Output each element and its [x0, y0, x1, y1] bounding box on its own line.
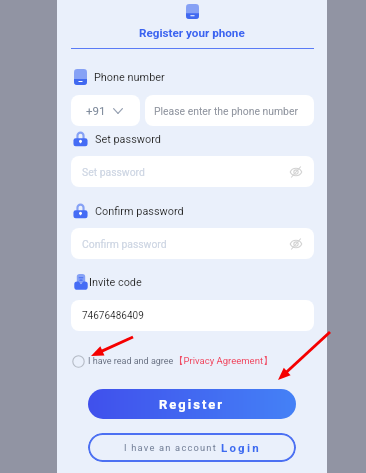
- staticText: Register your phone: [139, 26, 245, 40]
- button[interactable]: Toggle password visibility: [289, 165, 302, 178]
- button[interactable]: +91: [71, 95, 140, 126]
- button[interactable]: Set password: [71, 156, 314, 187]
- button[interactable]: Confirm password: [71, 228, 314, 259]
- staticText: Register: [159, 397, 225, 412]
- button[interactable]: Register: [88, 389, 296, 419]
- button[interactable]: I have an account: [88, 433, 296, 462]
- staticText: Login: [221, 441, 261, 454]
- staticText: 74676486409: [82, 310, 144, 322]
- button[interactable]: 74676486409: [71, 300, 314, 331]
- button[interactable]: 【Privacy Agreement】: [174, 355, 273, 367]
- staticText: Phone number: [94, 71, 165, 84]
- button[interactable]: Please enter the phone number: [145, 95, 314, 126]
- staticText: +91: [86, 104, 106, 117]
- staticText: Set password: [95, 133, 161, 146]
- staticText: Confirm password: [95, 205, 184, 218]
- staticText: Invite code: [89, 276, 142, 289]
- staticText: Set password: [82, 166, 145, 178]
- staticText: Confirm password: [82, 238, 167, 250]
- staticText: I have an account: [124, 442, 217, 453]
- staticText: 【Privacy Agreement】: [174, 355, 273, 367]
- staticText: I have read and agree: [88, 356, 174, 367]
- button[interactable]: Toggle password visibility: [289, 237, 302, 250]
- staticText: Please enter the phone number: [154, 105, 298, 117]
- button[interactable]: Agree to the privacy agreement: [71, 354, 85, 368]
